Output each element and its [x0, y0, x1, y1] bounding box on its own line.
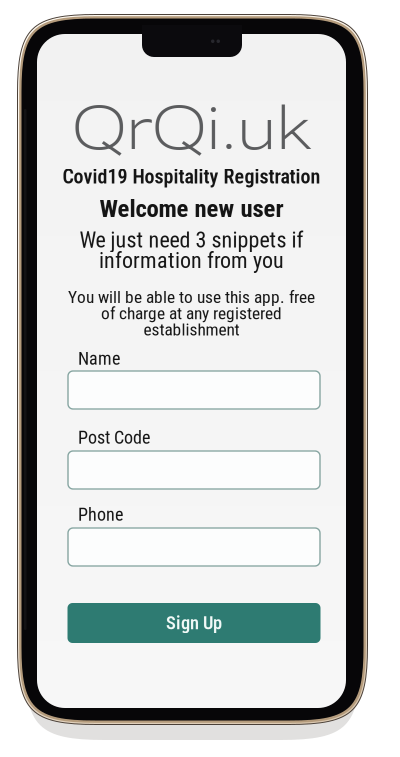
staticText: establishment [143, 319, 239, 340]
staticText: Covid19 Hospitality Registration [62, 165, 320, 188]
staticText: You will be able to use this app. free [68, 287, 315, 307]
button[interactable] [68, 451, 320, 489]
staticText: Post Code [78, 427, 150, 448]
staticText: Phone [78, 504, 123, 525]
button[interactable]: Sign Up [67, 603, 320, 643]
button[interactable] [68, 528, 320, 566]
staticText: Name [78, 348, 120, 369]
staticText: of charge at any registered [101, 303, 282, 323]
staticText: information from you [99, 247, 284, 273]
staticText: We just need 3 snippets if [79, 227, 303, 253]
button[interactable] [68, 371, 320, 409]
staticText: Welcome new user [99, 194, 283, 223]
staticText: QrQi.uk [72, 92, 310, 164]
staticText: Sign Up [166, 612, 222, 634]
